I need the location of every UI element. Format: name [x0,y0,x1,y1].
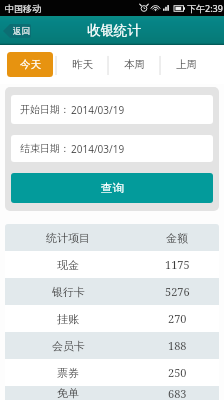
staticText: 收银统计 [87,22,141,39]
button[interactable]: 开始日期： [11,95,213,124]
staticText: 5276 [165,284,190,299]
button[interactable]: 统计项目 [5,224,219,251]
button[interactable]: 今天 [4,45,56,84]
staticText: 银行卡 [52,285,85,299]
staticText: 下午2:39 [187,2,223,14]
staticText: 1175 [165,257,190,272]
staticText: 统计项目 [46,231,90,245]
button[interactable]: 票券 [5,359,219,386]
staticText: 270 [168,311,187,326]
button[interactable]: 挂账 [5,305,219,332]
button[interactable]: 会员卡 [5,332,219,359]
staticText: 现金 [57,258,79,272]
button[interactable]: 本周 [108,45,160,84]
staticText: 683 [168,386,187,400]
staticText: 昨天 [72,58,93,71]
button[interactable]: 上周 [160,45,212,84]
staticText: 票券 [57,366,79,380]
staticText: 免单 [57,386,79,400]
button[interactable]: 返回 [3,24,31,38]
staticText: 2014/03/19 [71,103,125,117]
button[interactable]: 银行卡 [5,278,219,305]
staticText: 挂账 [57,312,79,326]
staticText: 结束日期： [20,142,70,155]
staticText: 188 [168,338,187,353]
button[interactable]: 结束日期： [11,135,213,162]
staticText: 返回 [13,26,30,37]
staticText: 上周 [176,58,197,71]
staticText: 中国移动 [5,3,41,14]
staticText: 会员卡 [52,339,85,353]
staticText: 本周 [124,58,145,71]
button[interactable]: 查询 [11,173,213,203]
staticText: 金额 [166,231,188,245]
button[interactable]: 免单 [5,386,219,400]
staticText: 250 [168,365,187,380]
staticText: 今天 [20,58,41,71]
staticText: 开始日期： [20,103,70,116]
staticText: 查询 [101,181,124,195]
staticText: 2014/03/19 [71,142,125,156]
button[interactable]: 昨天 [56,45,108,84]
button[interactable]: 现金 [5,251,219,278]
